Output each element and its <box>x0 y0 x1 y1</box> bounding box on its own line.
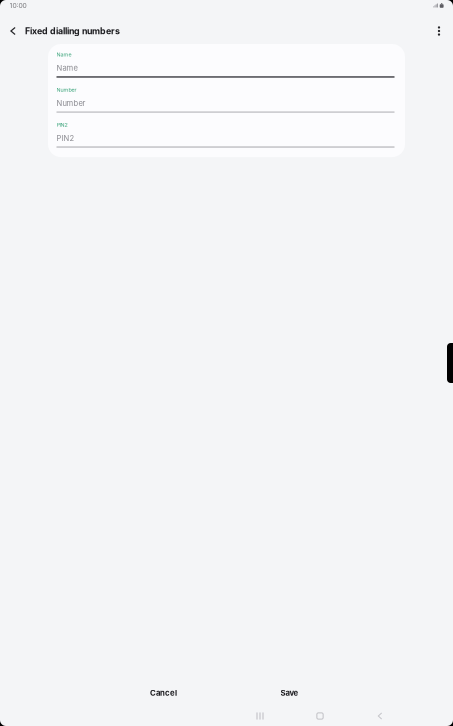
staticText: Fixed dialling numbers <box>25 26 120 36</box>
staticText: PIN2 <box>56 134 74 143</box>
button[interactable]: Back <box>350 707 410 725</box>
button[interactable]: Back <box>1 19 25 43</box>
button[interactable]: Recent apps <box>230 707 290 725</box>
button[interactable]: Save <box>226 683 352 703</box>
staticText: Number <box>56 87 76 93</box>
staticText: Cancel <box>150 688 177 698</box>
staticText: Number <box>56 99 85 108</box>
button[interactable]: Home <box>290 707 350 725</box>
staticText: 10:00 <box>10 1 27 10</box>
staticText: PIN2 <box>56 121 67 128</box>
button[interactable]: More options <box>426 19 452 43</box>
staticText: Name <box>56 63 77 73</box>
staticText: Save <box>280 688 298 698</box>
button[interactable]: Cancel <box>100 683 226 703</box>
staticText: Name <box>56 51 71 58</box>
